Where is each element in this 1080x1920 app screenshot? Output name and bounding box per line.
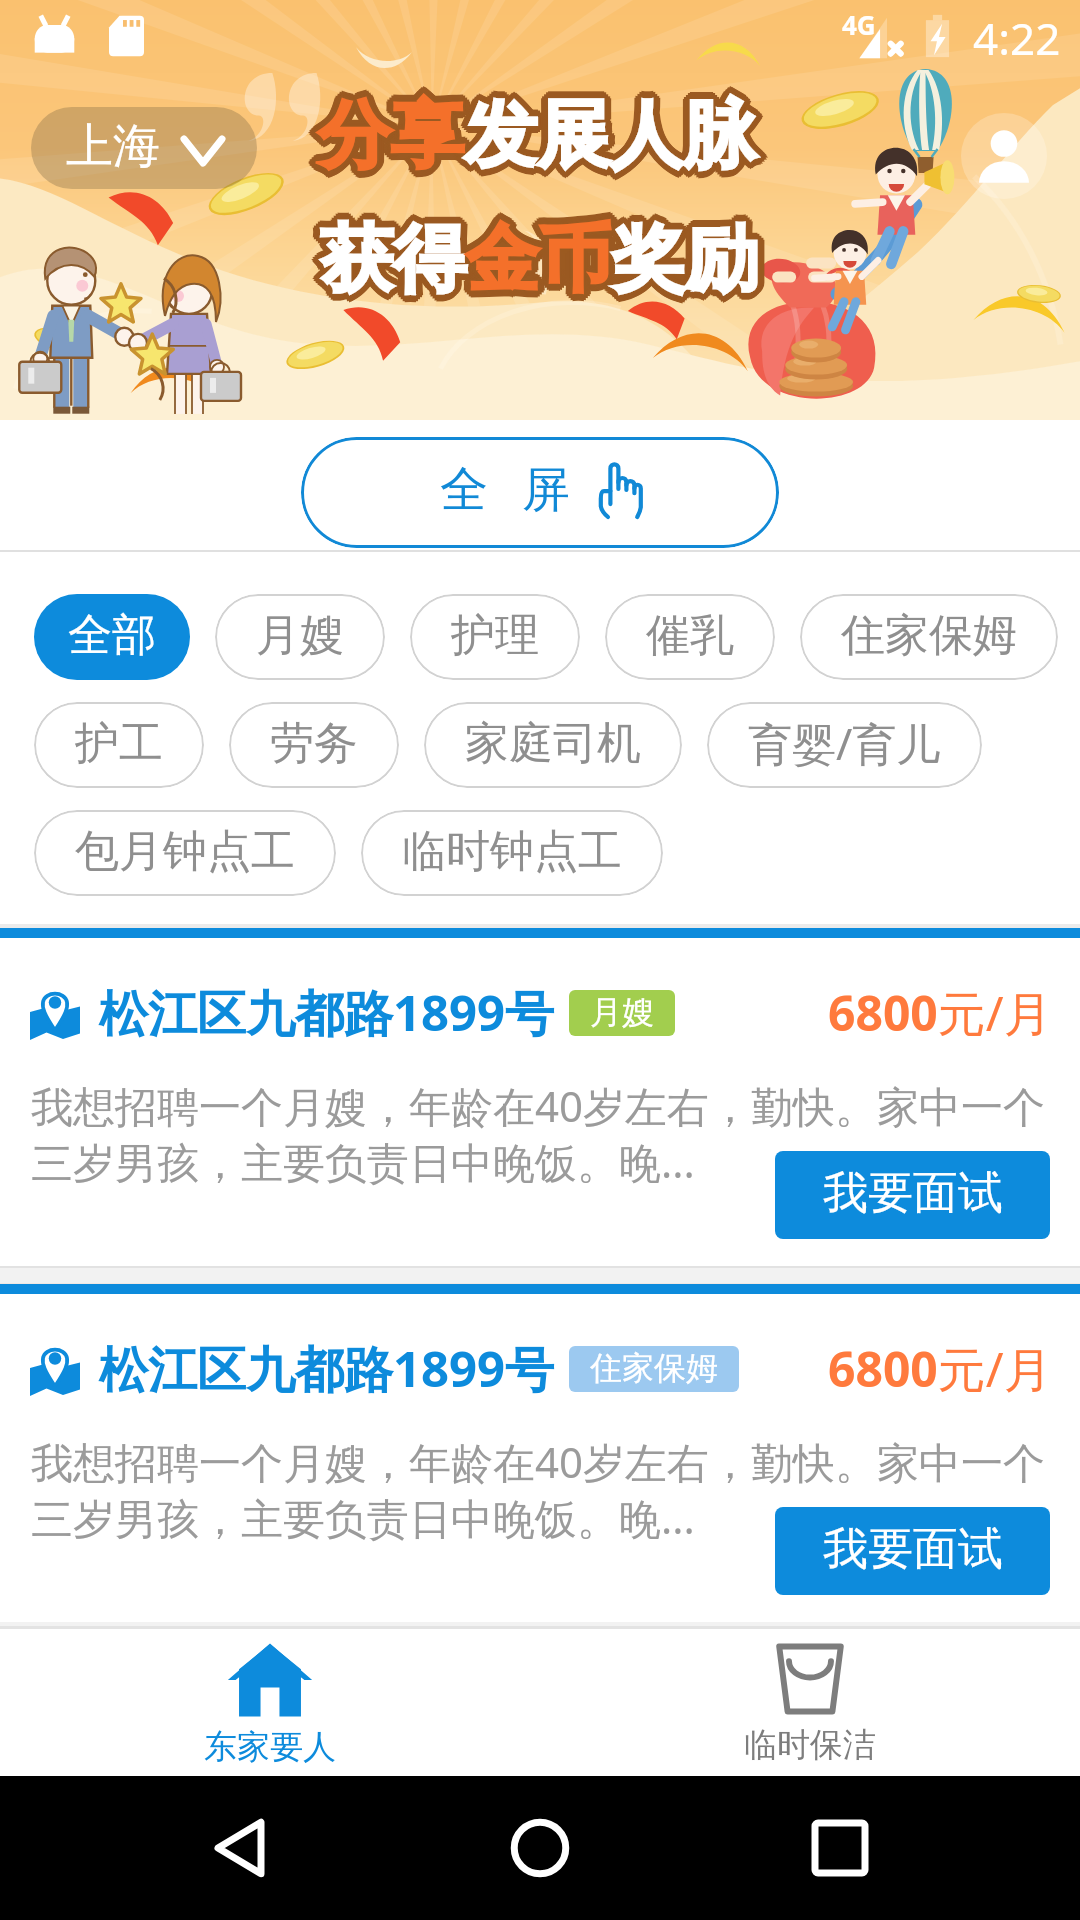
staticText: 获得金币奖励 [320,207,758,299]
staticText: 获得金币奖励 [320,217,758,309]
staticText: 分享发展人脉 [322,86,760,178]
staticText: 获得金币奖励 [316,210,754,302]
staticText: 分享发展人脉 [325,90,763,182]
button[interactable]: 护工 [34,702,204,788]
staticText: 分享发展人脉 [317,88,755,180]
staticText: 获得金币奖励 [319,210,757,302]
staticText: 分享发展人脉 [322,89,760,181]
staticText: 获得金币奖励 [322,216,760,308]
staticText: 护理 [451,608,539,663]
button[interactable]: 松江区九都路1899号 [0,928,1080,1266]
staticText: 分享发展人脉 [318,85,756,177]
button[interactable]: 东家要人 [0,1629,540,1755]
button[interactable]: Recents [780,1788,900,1908]
staticText: 屏 [522,460,570,520]
button[interactable]: 全 [301,437,779,548]
staticText: 获得金币奖励 [315,214,753,306]
staticText: 获得金币奖励 [324,215,762,307]
staticText: 分享发展人脉 [324,92,762,184]
staticText: 分享发展人脉 [314,94,752,186]
button[interactable]: 催乳 [605,594,775,680]
staticText: 获得金币奖励 [323,217,761,309]
staticText: 获得金币奖励 [320,209,758,301]
staticText: 月嫂 [590,992,654,1032]
button[interactable]: Back [180,1788,300,1908]
staticText: 临时钟点工 [402,824,622,879]
staticText: 分享发展人脉 [320,92,758,184]
button[interactable]: 我要面试 [775,1151,1050,1239]
staticText: 我想招聘一个月嫂，年龄在40岁左右，勤快。家中一个三岁男孩，主要负责日中晚饭。晚… [31,1433,1053,1547]
staticText: 获得金币奖励 [321,216,759,308]
staticText: 获得金币奖励 [318,220,756,312]
staticText: 分享发展人脉 [319,92,757,184]
staticText: 获得金币奖励 [320,219,758,311]
staticText: 分享发展人脉 [319,86,757,178]
staticText: 获得金币奖励 [321,218,759,310]
staticText: 获得金币奖励 [313,214,751,306]
staticText: 分享发展人脉 [311,90,749,182]
staticText: 分享发展人脉 [314,91,752,183]
staticText: 分享发展人脉 [320,88,758,180]
staticText: 获得金币奖励 [319,216,757,308]
staticText: 获得金币奖励 [316,213,754,305]
button[interactable]: 我要面试 [775,1507,1050,1595]
staticText: 分享发展人脉 [323,90,761,182]
button[interactable]: 临时保洁 [540,1629,1080,1753]
staticText: 分享发展人脉 [317,86,755,178]
staticText: 获得金币奖励 [321,212,759,304]
staticText: 分享发展人脉 [316,91,754,183]
staticText: 我要面试 [823,1165,1003,1222]
staticText: 松江区九都路1899号 [99,1335,555,1402]
staticText: 分享发展人脉 [318,90,756,182]
staticText: 获得金币奖励 [314,216,752,308]
button[interactable]: 松江区九都路1899号 [0,1284,1080,1622]
staticText: 分享发展人脉 [321,93,759,185]
staticText: 家庭司机 [465,716,641,771]
staticText: 获得金币奖励 [324,213,762,305]
staticText: 6800元/月 [828,1336,1052,1402]
staticText: 获得金币奖励 [324,210,762,302]
staticText: 获得金币奖励 [317,214,755,306]
staticText: 分享发展人脉 [321,90,759,182]
staticText: 分享发展人脉 [316,88,754,180]
button[interactable]: Home [480,1788,600,1908]
staticText: 临时保洁 [744,1724,876,1766]
staticText: 分享发展人脉 [319,94,757,186]
button[interactable]: 育婴/育儿 [707,702,982,788]
staticText: 获得金币奖励 [322,208,760,300]
button[interactable]: Profile [961,113,1047,199]
staticText: 分享发展人脉 [318,83,756,175]
staticText: 我要面试 [823,1521,1003,1578]
staticText: 分享发展人脉 [313,90,751,182]
staticText: 获得金币奖励 [327,214,765,306]
staticText: 4G [842,7,876,42]
button[interactable]: 上海 [31,107,257,189]
staticText: 分享发展人脉 [316,96,754,188]
staticText: 获得金币奖励 [316,218,754,310]
staticText: 全部 [68,608,156,663]
staticText: 分享发展人脉 [318,93,756,185]
staticText: 获得金币奖励 [325,214,763,306]
button[interactable]: 包月钟点工 [34,810,336,896]
button[interactable]: 月嫂 [215,594,385,680]
button[interactable]: 劳务 [229,702,399,788]
staticText: 分享发展人脉 [322,91,760,183]
staticText: 获得金币奖励 [318,212,756,304]
staticText: 获得金币奖励 [317,211,755,303]
staticText: 分享发展人脉 [318,97,756,189]
staticText: 育婴/育儿 [748,713,941,773]
button[interactable]: 家庭司机 [424,702,682,788]
staticText: 获得金币奖励 [319,212,757,304]
staticText: 住家保姆 [590,1348,718,1388]
button[interactable]: 临时钟点工 [361,810,663,896]
staticText: 上海 [66,117,160,176]
staticText: 劳务 [270,716,358,771]
staticText: 获得金币奖励 [322,212,760,304]
button[interactable]: 护理 [410,594,580,680]
staticText: 分享发展人脉 [316,84,754,176]
staticText: 分享发展人脉 [317,94,755,186]
button[interactable]: 全部 [34,594,190,680]
button[interactable]: 住家保姆 [800,594,1058,680]
staticText: 6800元/月 [828,980,1052,1046]
staticText: 护工 [75,716,163,771]
